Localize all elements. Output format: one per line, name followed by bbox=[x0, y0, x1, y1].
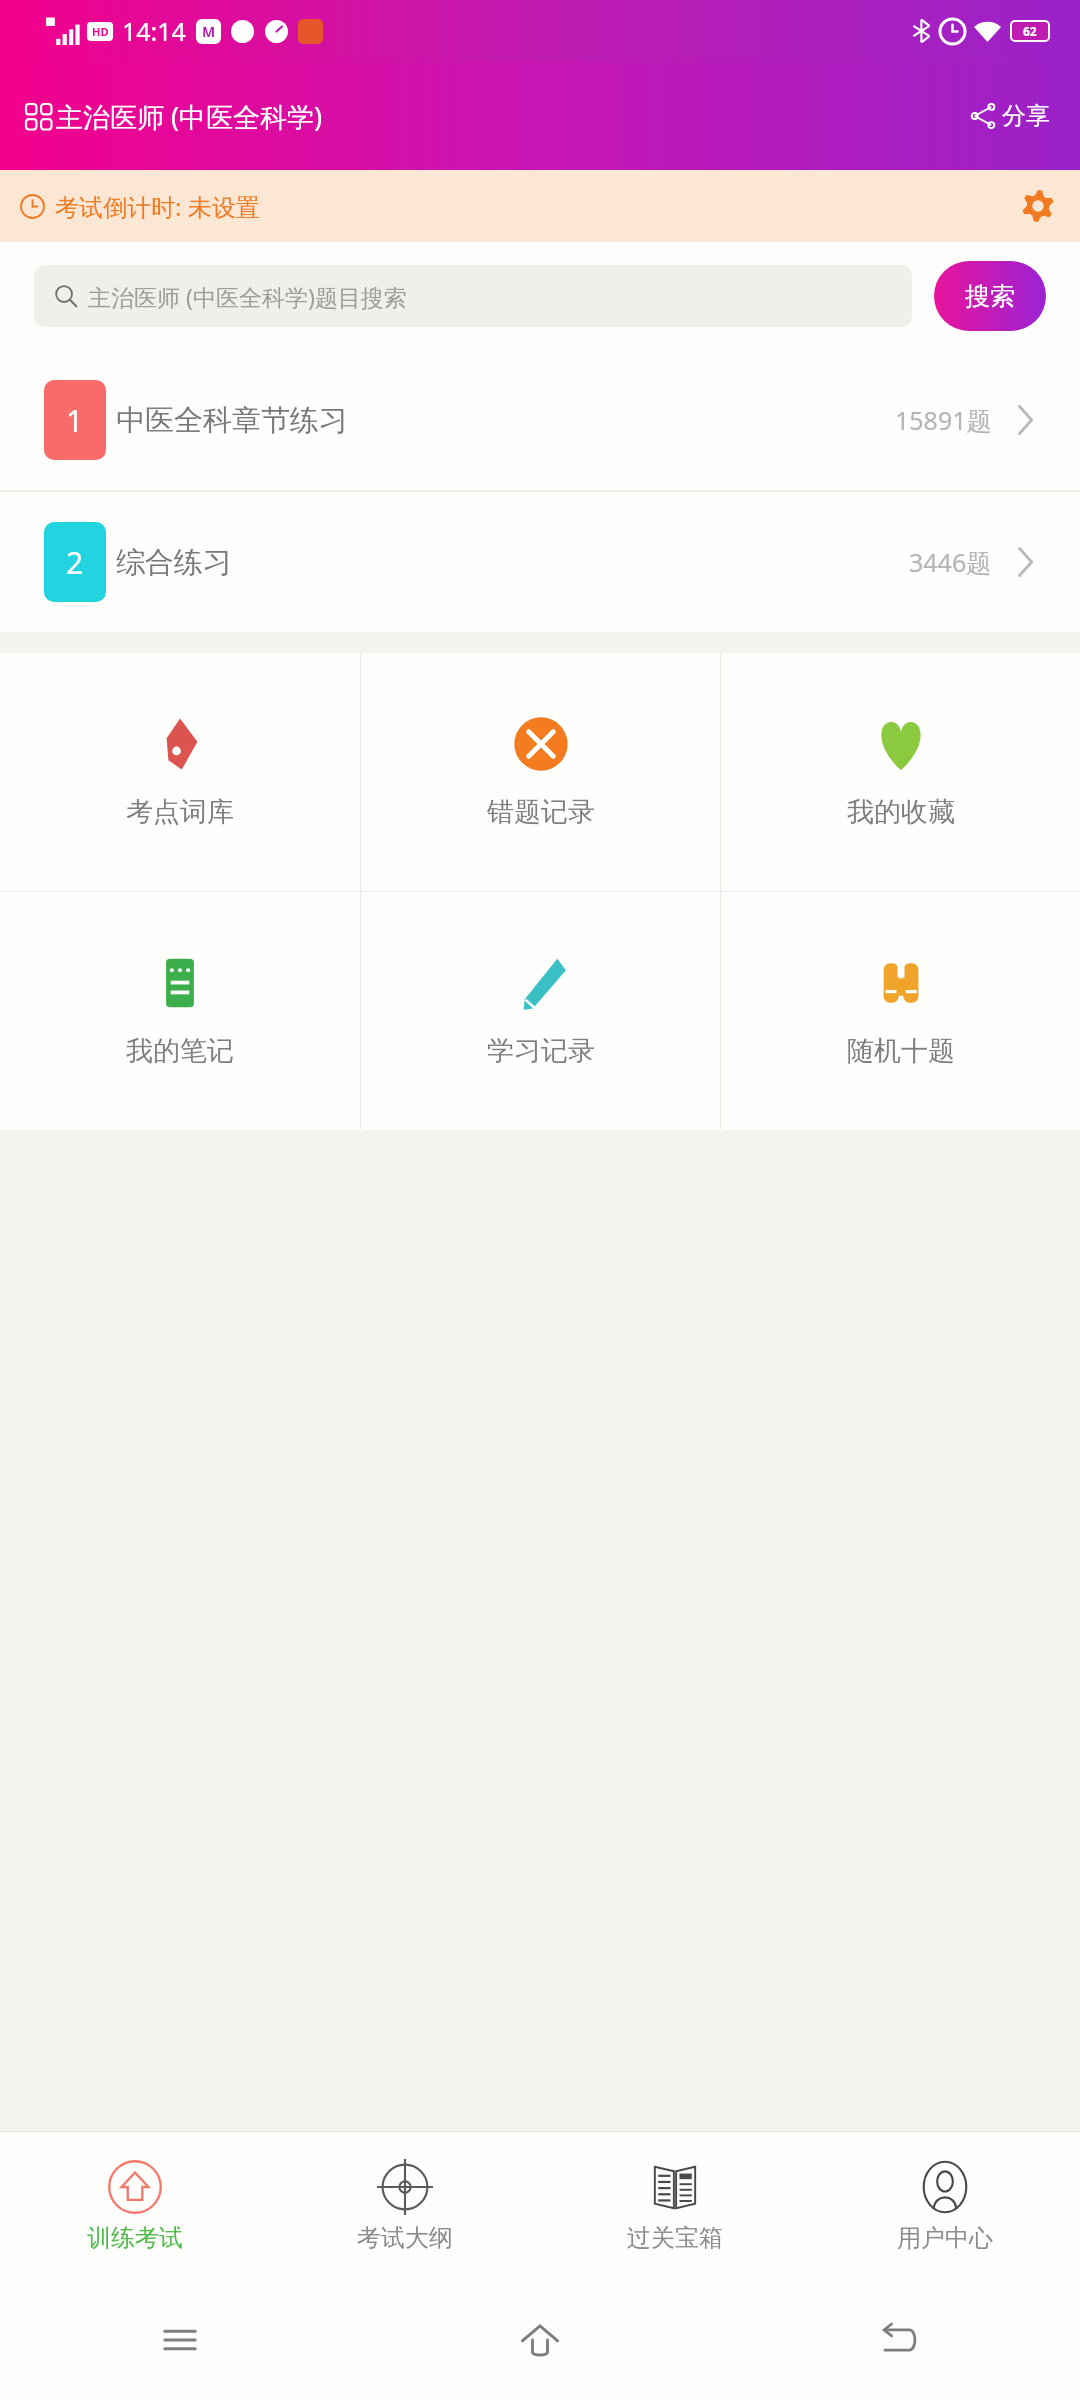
button[interactable]: 学习记录 bbox=[361, 892, 720, 1130]
button[interactable]: 考点词库 bbox=[0, 653, 360, 891]
button[interactable]: 用户中心 bbox=[810, 2132, 1080, 2280]
staticText: 随机十题 bbox=[847, 1034, 955, 1068]
button[interactable]: 2 bbox=[0, 492, 1080, 632]
button[interactable]: Back bbox=[720, 2280, 1080, 2400]
button[interactable]: Home bbox=[360, 2280, 720, 2400]
button[interactable]: 训练考试 bbox=[0, 2132, 270, 2280]
staticText: 14:14 bbox=[122, 14, 186, 48]
button[interactable]: 分享 bbox=[966, 95, 1054, 137]
button[interactable]: Recents bbox=[0, 2280, 360, 2400]
staticText: HD bbox=[92, 24, 109, 39]
button[interactable]: 设置倒计时 bbox=[1018, 186, 1058, 226]
staticText: 学习记录 bbox=[487, 1034, 595, 1068]
staticText: 2 bbox=[66, 542, 84, 583]
staticText: 考试倒计时: 未设置 bbox=[55, 190, 260, 223]
staticText: 训练考试 bbox=[87, 2223, 183, 2253]
staticText: 中医全科章节练习 bbox=[116, 402, 348, 439]
staticText: 主治医师 (中医全科学)题目搜索 bbox=[88, 281, 407, 312]
staticText: 我的收藏 bbox=[847, 795, 955, 829]
staticText: 分享 bbox=[1002, 101, 1050, 131]
staticText: 3446题 bbox=[909, 545, 992, 579]
button[interactable]: 错题记录 bbox=[361, 653, 720, 891]
staticText: 1 bbox=[66, 400, 84, 441]
staticText: 我的笔记 bbox=[126, 1034, 234, 1068]
button[interactable]: 主治医师 (中医全科学) bbox=[26, 98, 323, 135]
staticText: 综合练习 bbox=[116, 544, 232, 581]
button[interactable]: 1 bbox=[0, 350, 1080, 490]
staticText: 62 bbox=[1023, 23, 1037, 39]
staticText: 15891题 bbox=[895, 403, 992, 437]
staticText: 用户中心 bbox=[897, 2223, 993, 2253]
staticText: 考点词库 bbox=[126, 795, 234, 829]
staticText: 搜索 bbox=[965, 281, 1015, 312]
staticText: 考试大纲 bbox=[357, 2223, 453, 2253]
button[interactable]: 考试大纲 bbox=[270, 2132, 540, 2280]
button[interactable]: 考试倒计时: 未设置 bbox=[0, 170, 1080, 242]
button[interactable]: 我的笔记 bbox=[0, 892, 360, 1130]
button[interactable]: 我的收藏 bbox=[721, 653, 1080, 891]
button[interactable]: 搜索 bbox=[934, 261, 1046, 331]
button[interactable]: 主治医师 (中医全科学)题目搜索 bbox=[34, 265, 912, 327]
button[interactable]: 过关宝箱 bbox=[540, 2132, 810, 2280]
staticText: 过关宝箱 bbox=[627, 2223, 723, 2253]
button[interactable]: 随机十题 bbox=[721, 892, 1080, 1130]
staticText: 主治医师 (中医全科学) bbox=[56, 98, 323, 135]
staticText: M bbox=[202, 22, 216, 41]
staticText: 错题记录 bbox=[487, 795, 595, 829]
